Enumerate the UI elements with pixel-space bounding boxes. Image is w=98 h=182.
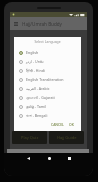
button[interactable]: தமிழ் - Tamil: [14, 102, 81, 111]
button[interactable]: English Transliteration: [14, 75, 81, 84]
staticText: தமிழ் - Tamil: [26, 104, 47, 109]
button[interactable]: Recents: [62, 151, 76, 165]
staticText: العربية - Arabic: [26, 86, 50, 91]
staticText: English: [26, 50, 39, 55]
button[interactable]: Back: [21, 151, 35, 165]
staticText: हिन्दी - Hindi: [26, 68, 45, 73]
staticText: Hajj Guide: [57, 135, 77, 140]
button[interactable]: Open navigation menu: [10, 17, 22, 30]
staticText: Hajj/Umrah Buddy: [22, 21, 62, 27]
staticText: Play Quiz: [21, 135, 39, 140]
staticText: বাংলা - Bengali: [26, 113, 48, 118]
staticText: Select Language: [14, 39, 81, 44]
staticText: OK: [69, 122, 74, 127]
button[interactable]: ગુજરાતી - Gujarati: [14, 93, 81, 102]
staticText: اردو - Urdu: [26, 59, 44, 64]
button[interactable]: OK: [68, 121, 75, 128]
button[interactable]: العربية - Arabic: [14, 84, 81, 93]
button[interactable]: বাংলা - Bengali: [14, 111, 81, 120]
staticText: ગુજરાતી - Gujarati: [26, 95, 55, 100]
button[interactable]: Home: [42, 151, 56, 165]
button[interactable]: हिन्दी - Hindi: [14, 66, 81, 75]
staticText: English Transliteration: [26, 77, 64, 82]
staticText: CANCEL: [51, 122, 64, 127]
button[interactable]: CANCEL: [50, 121, 65, 128]
button[interactable]: اردو - Urdu: [14, 57, 81, 66]
button[interactable]: English: [14, 48, 81, 57]
